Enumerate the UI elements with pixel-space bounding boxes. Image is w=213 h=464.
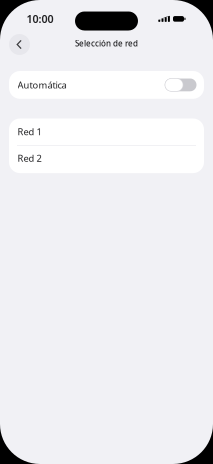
button[interactable]: Atrás: [9, 34, 30, 55]
staticText: 10:00: [26, 12, 53, 26]
staticText: Red 2: [17, 152, 41, 164]
button[interactable]: Automática: [9, 71, 204, 99]
staticText: Selección de red: [75, 38, 138, 49]
staticText: Red 1: [17, 126, 41, 138]
staticText: Automática: [17, 79, 66, 91]
button[interactable]: Red 2: [9, 146, 204, 173]
button[interactable]: Red 1: [9, 118, 204, 145]
